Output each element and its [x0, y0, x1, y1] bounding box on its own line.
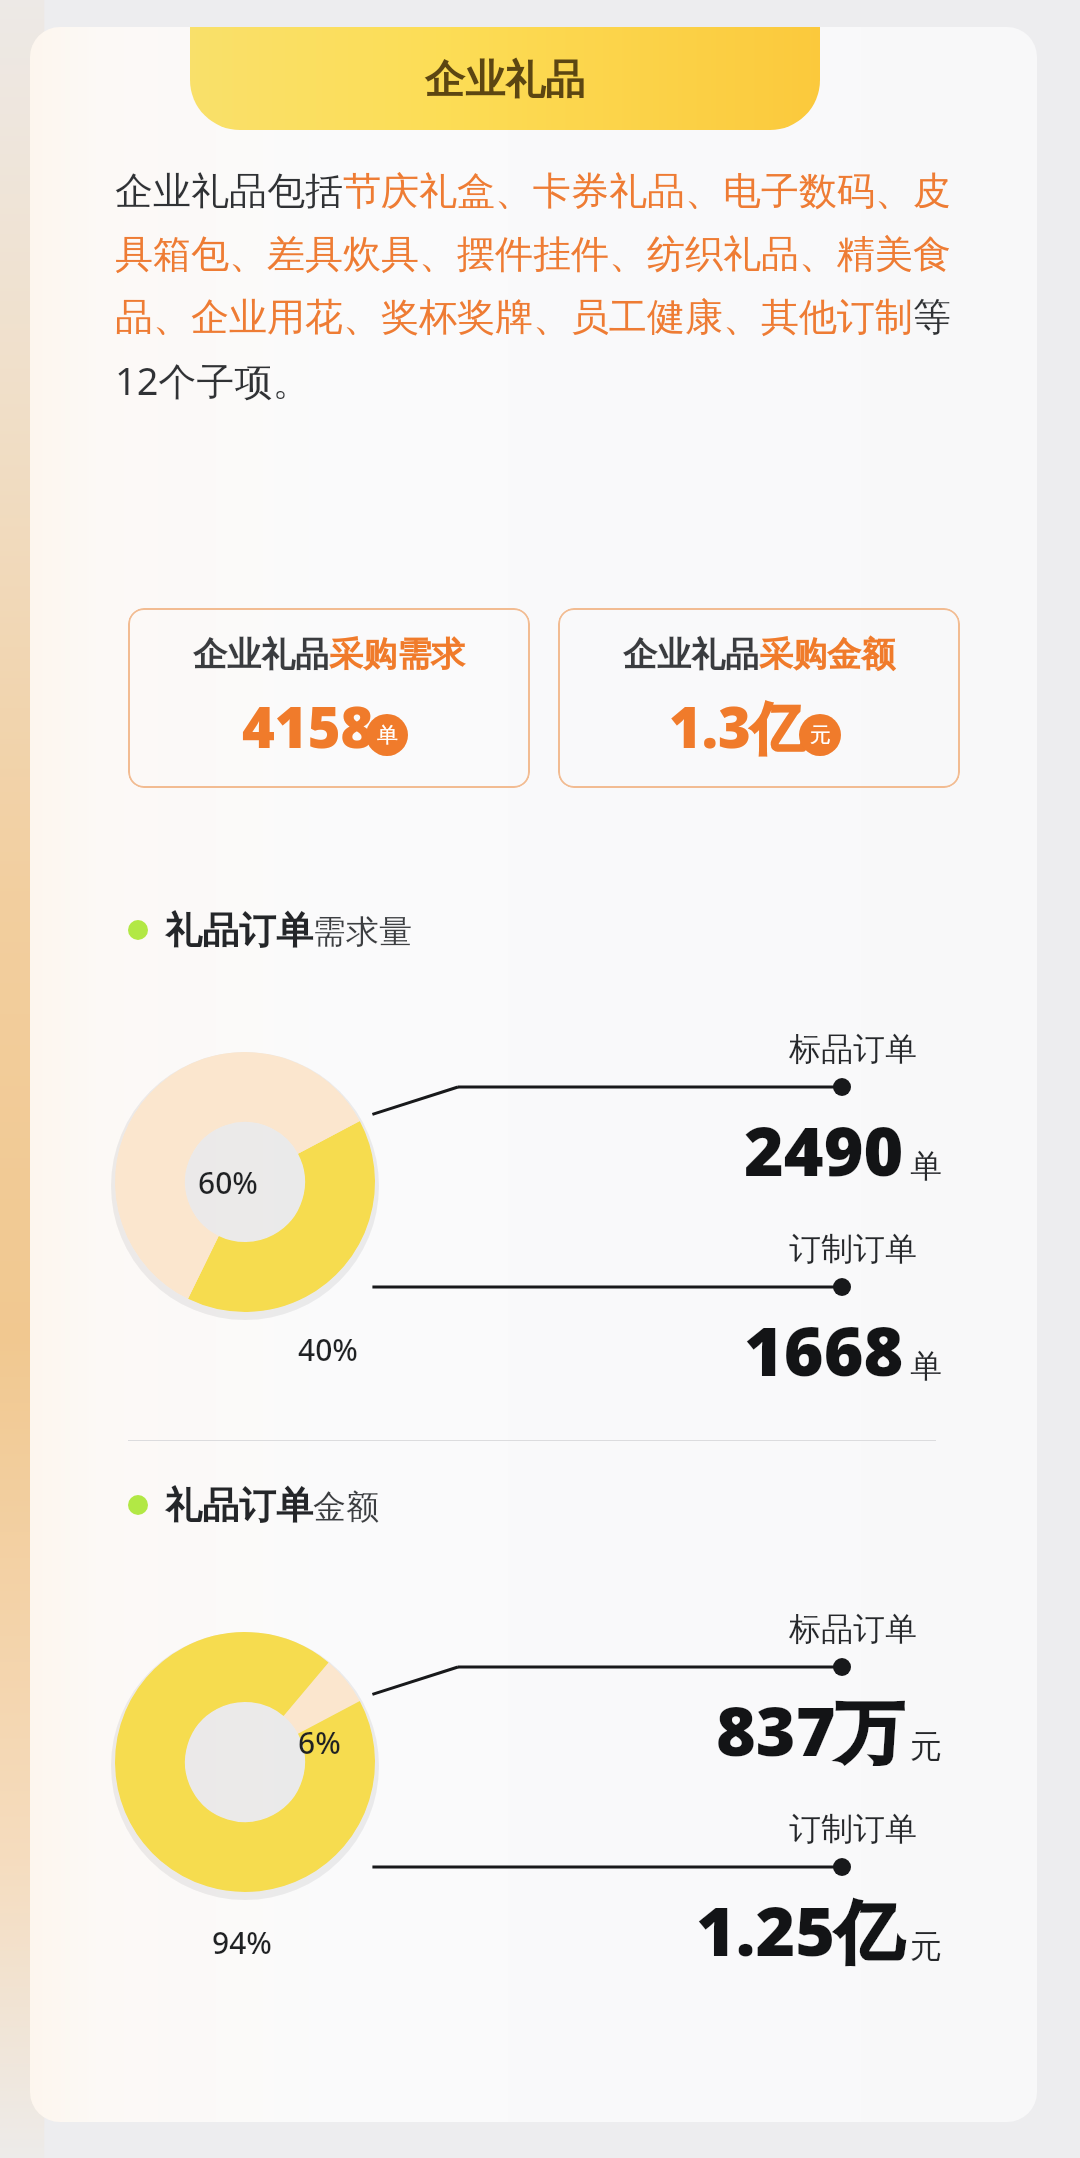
button[interactable]: 企业礼品 — [190, 27, 820, 130]
button[interactable]: 企业礼品采购金额 — [558, 608, 960, 788]
staticText: 企业礼品采购金额 — [623, 633, 895, 676]
staticText: 礼品订单金额 — [165, 1482, 379, 1529]
staticText: 元 — [910, 1926, 942, 1966]
staticText: 837万 — [716, 1683, 904, 1776]
staticText: 94% — [212, 1922, 272, 1963]
button[interactable]: 礼品订单金额 — [128, 1475, 379, 1535]
staticText: 企业礼品包括节庆礼盒、卡券礼品、电子数码、皮具箱包、差具炊具、摆件挂件、纺织礼品… — [115, 167, 955, 407]
staticText: 1.25亿 — [696, 1883, 904, 1976]
staticText: 1668 — [744, 1303, 904, 1396]
button[interactable]: 企业礼品采购需求 — [128, 608, 530, 788]
staticText: 订制订单 — [789, 1229, 917, 1269]
staticText: 单 — [377, 722, 398, 748]
staticText: 企业礼品 — [425, 54, 585, 104]
staticText: 礼品订单需求量 — [165, 907, 412, 954]
staticText: 单 — [910, 1346, 942, 1386]
staticText: 元 — [910, 1726, 942, 1766]
staticText: 标品订单 — [789, 1029, 917, 1069]
staticText: 1.3亿 — [669, 688, 807, 764]
staticText: 60% — [198, 1162, 258, 1203]
staticText: 企业礼品采购需求 — [193, 633, 465, 676]
staticText: 元 — [810, 722, 831, 748]
staticText: 4158 — [242, 688, 374, 764]
staticText: 40% — [298, 1329, 358, 1370]
staticText: 标品订单 — [789, 1609, 917, 1649]
staticText: 2490 — [744, 1103, 904, 1196]
button[interactable]: 礼品订单需求量 — [128, 900, 412, 960]
staticText: 单 — [910, 1146, 942, 1186]
staticText: 6% — [298, 1722, 341, 1763]
staticText: 订制订单 — [789, 1809, 917, 1849]
